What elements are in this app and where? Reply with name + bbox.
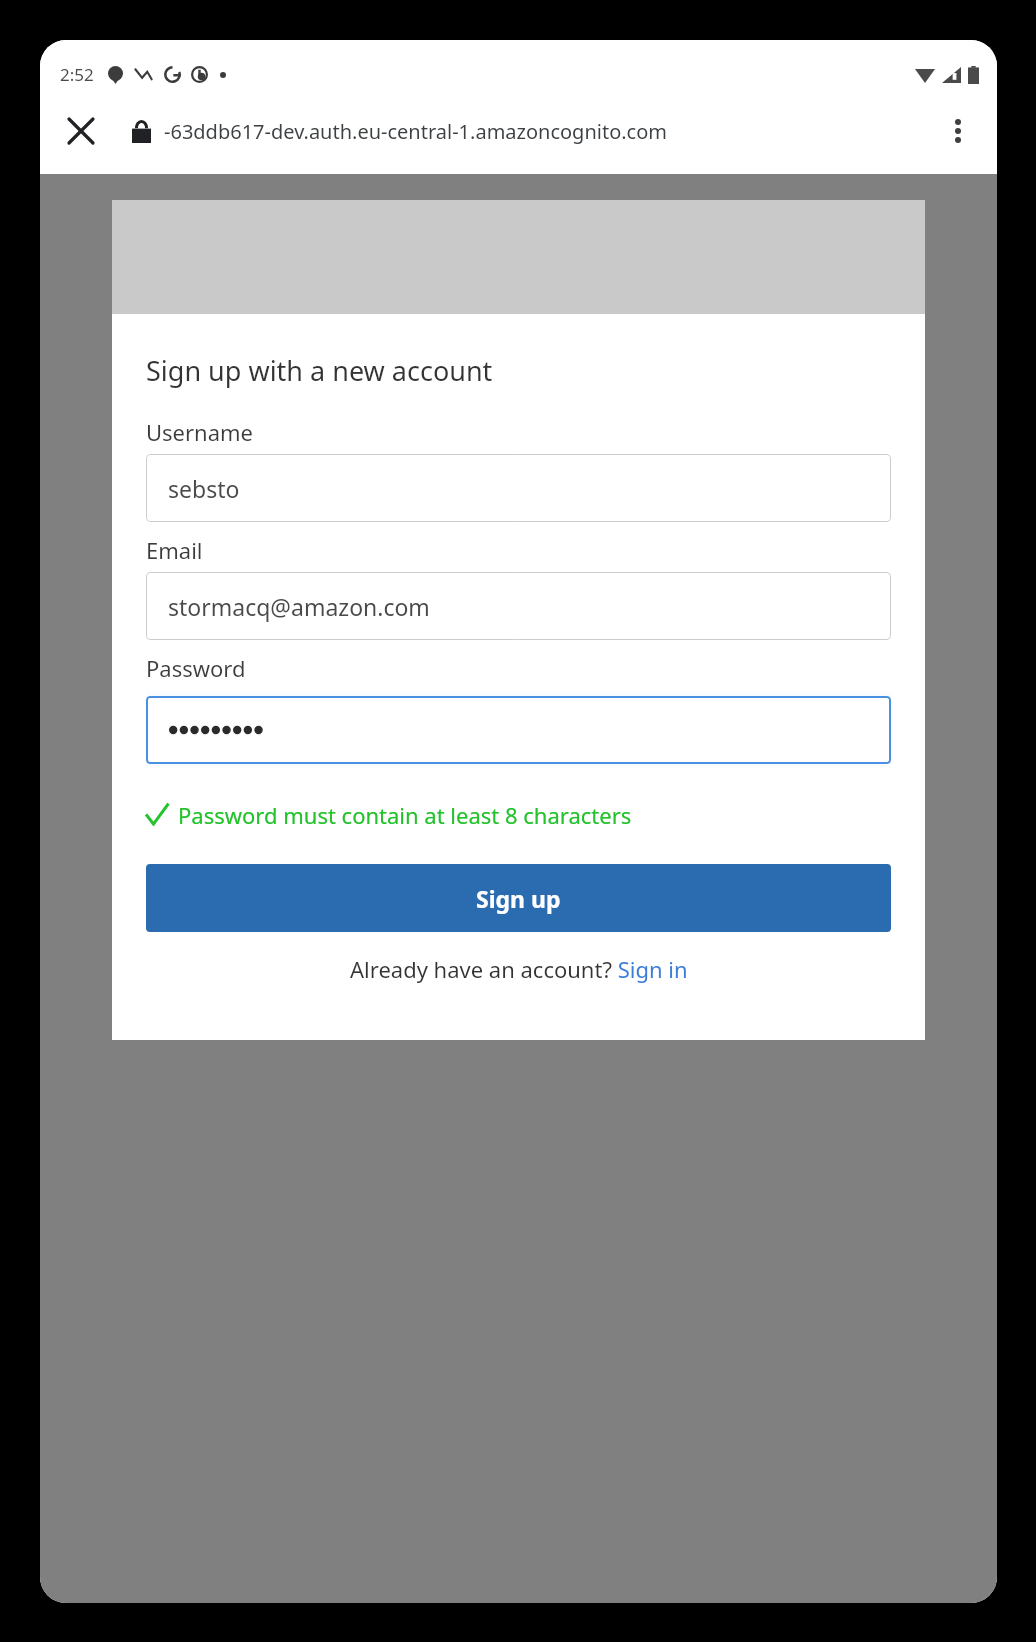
button[interactable]: Password field (146, 696, 891, 764)
staticText: Password (146, 653, 246, 683)
button[interactable]: More options (933, 106, 983, 156)
staticText: Sign up (476, 883, 561, 914)
staticText: Already have an account? Sign in (350, 954, 688, 984)
staticText: sebsto (168, 473, 240, 504)
button[interactable]: sebsto (146, 454, 891, 522)
button[interactable]: Already have an account? Sign in (146, 954, 891, 984)
button[interactable]: Close (54, 104, 108, 158)
staticText: stormacq@amazon.com (168, 591, 430, 622)
staticText: Password must contain at least 8 charact… (178, 800, 632, 830)
staticText: Email (146, 535, 203, 565)
button[interactable]: stormacq@amazon.com (146, 572, 891, 640)
staticText: -63ddb617-dev.auth.eu-central-1.amazonco… (164, 118, 923, 145)
staticText: Sign up with a new account (146, 352, 493, 389)
staticText: 2:52 (60, 63, 94, 86)
staticText: Username (146, 417, 254, 447)
button[interactable]: Sign up (146, 864, 891, 932)
